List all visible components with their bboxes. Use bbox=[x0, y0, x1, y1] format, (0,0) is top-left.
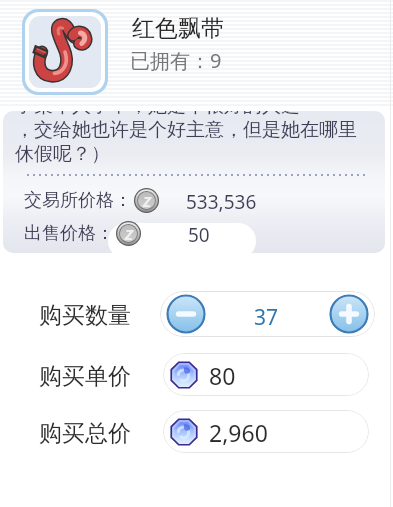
staticText: 购买数量 bbox=[39, 301, 131, 330]
staticText: 休假呢？） bbox=[15, 142, 110, 166]
staticText: 于某个人手中，她是个很好的人选 bbox=[15, 111, 300, 118]
staticText: 红色飘带 bbox=[132, 14, 224, 43]
staticText: 533,536 bbox=[186, 189, 257, 215]
staticText: Z bbox=[125, 224, 133, 244]
staticText: 80 bbox=[209, 360, 236, 391]
button[interactable]: 2,960 bbox=[163, 410, 369, 453]
staticText: 购买单价 bbox=[39, 362, 131, 391]
button[interactable]: 80 bbox=[163, 353, 369, 396]
staticText: 已拥有：9 bbox=[130, 47, 222, 74]
staticText: 交易所价格： bbox=[24, 189, 132, 212]
staticText: 37 bbox=[254, 303, 279, 332]
button[interactable]: Decrease quantity bbox=[166, 294, 206, 334]
staticText: 购买总价 bbox=[39, 419, 131, 448]
staticText: 2,960 bbox=[209, 417, 268, 448]
staticText: Z bbox=[143, 191, 151, 211]
staticText: ，交给她也许是个好主意，但是她在哪里 bbox=[15, 118, 357, 142]
button[interactable]: Increase quantity bbox=[329, 294, 369, 334]
staticText: 出售价格： bbox=[24, 222, 114, 245]
staticText: 50 bbox=[188, 222, 210, 248]
